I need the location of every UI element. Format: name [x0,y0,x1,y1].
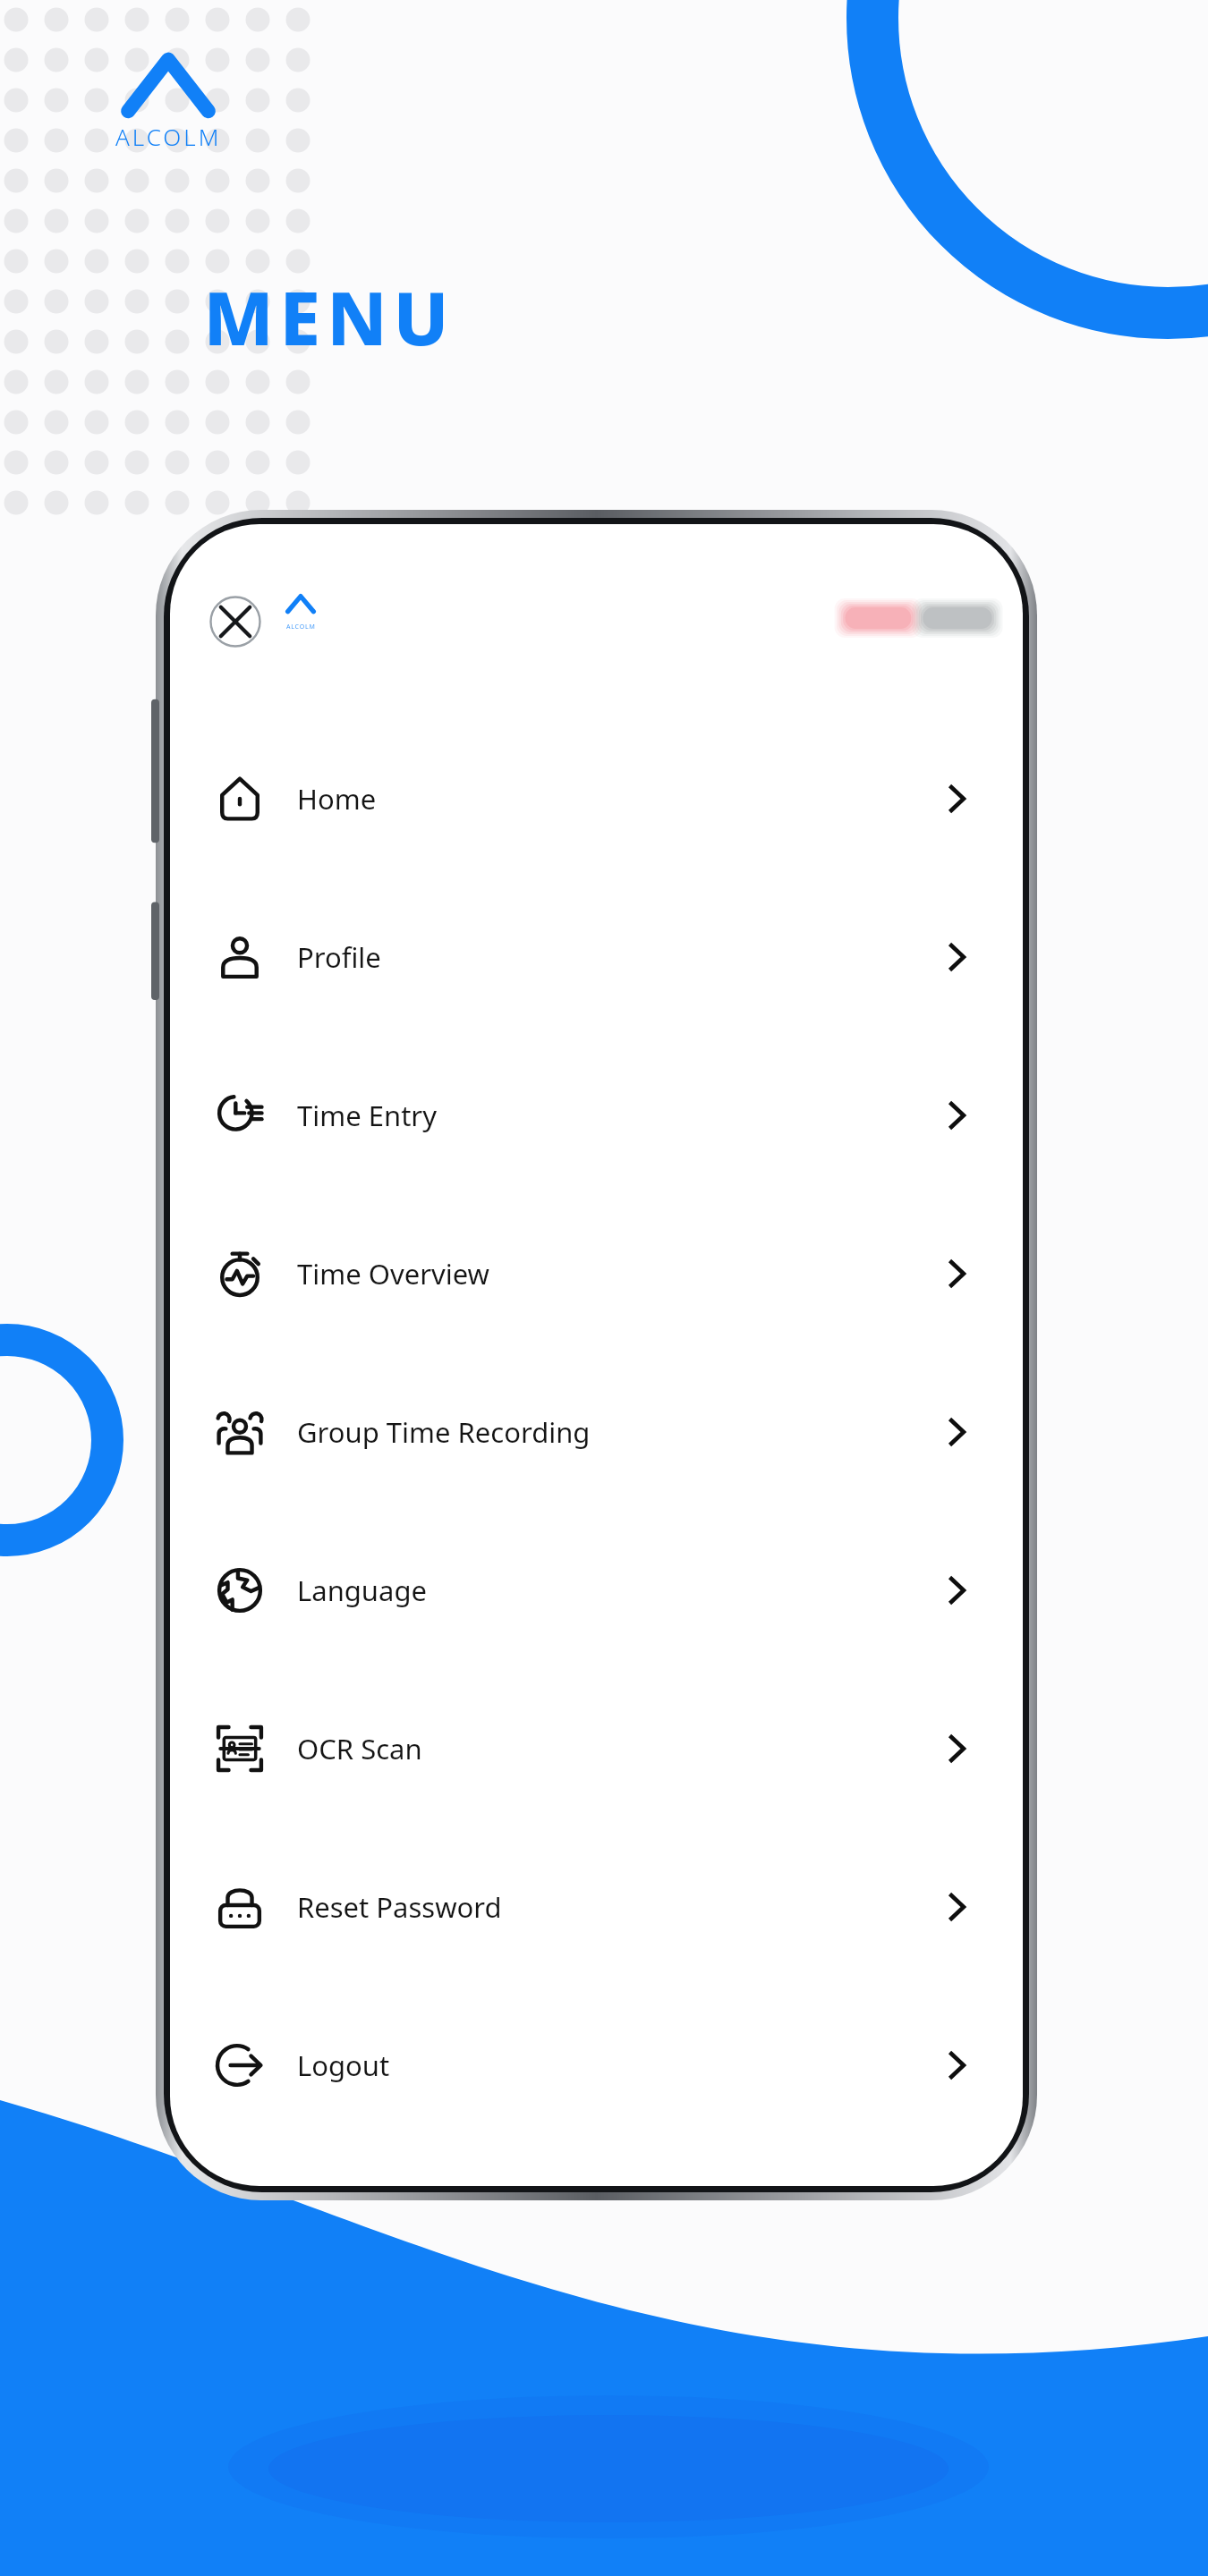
staticText: Logout [297,2046,390,2084]
button[interactable]: Reset Password [170,1827,1023,1986]
button[interactable]: Close [209,596,261,648]
staticText: ALCOLM [115,121,222,152]
button[interactable]: Time Entry [170,1036,1023,1194]
button[interactable]: Logout [170,1986,1023,2144]
button[interactable]: Home [170,719,1023,877]
staticText: Reset Password [297,1888,502,1926]
button[interactable]: Group Time Recording [170,1352,1023,1511]
button[interactable]: Language [170,1511,1023,1669]
staticText: ALCOLM [286,623,316,631]
staticText: Language [297,1572,427,1609]
button[interactable]: Time Overview [170,1194,1023,1352]
staticText: OCR Scan [297,1730,422,1767]
staticText: Time Entry [297,1097,437,1134]
staticText: Home [297,780,377,818]
staticText: Time Overview [297,1255,489,1292]
button[interactable]: OCR Scan [170,1669,1023,1827]
staticText: MENU [0,267,659,367]
staticText: Profile [297,938,381,976]
staticText: Group Time Recording [297,1413,591,1451]
button[interactable]: Profile [170,877,1023,1036]
